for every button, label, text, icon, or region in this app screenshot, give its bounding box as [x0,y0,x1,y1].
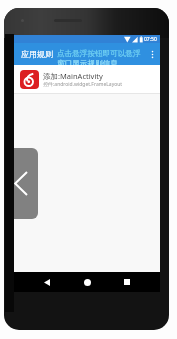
staticText: 应用规则 [21,49,53,59]
button[interactable]: 添加:MainActivity [14,65,160,93]
staticText: 窗口显示规则信息 [57,59,118,65]
button[interactable]: More options [151,50,154,59]
button[interactable]: Recents [117,272,137,292]
staticText: 添加:MainActivity [43,71,103,81]
button[interactable]: Back [14,148,38,219]
button[interactable]: Back [37,272,57,292]
staticText: 07:50 [144,36,157,43]
staticText: 控件:android.widget.FrameLayout [43,81,123,88]
button[interactable]: Home [77,272,97,292]
staticText: 点击悬浮按钮即可以悬浮 [57,49,141,59]
